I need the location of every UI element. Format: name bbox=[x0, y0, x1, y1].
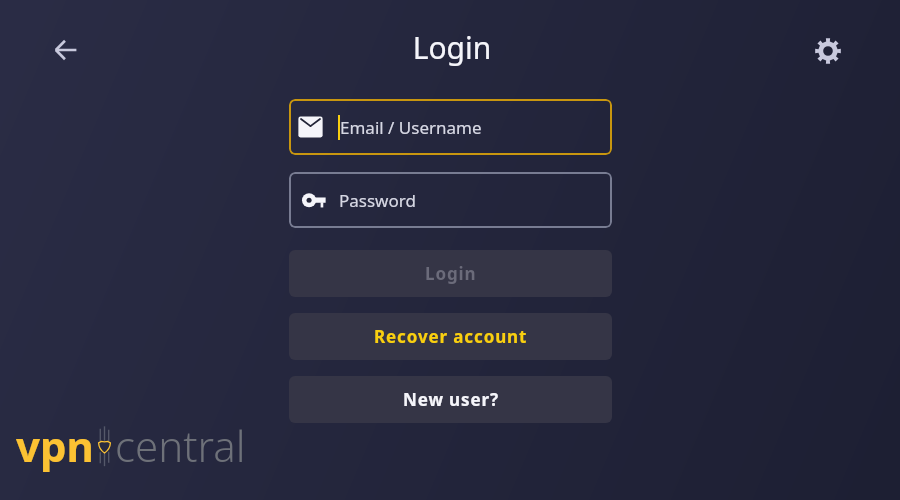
staticText: Recover account bbox=[374, 325, 528, 348]
staticText: Email / Username bbox=[340, 116, 482, 139]
button[interactable]: Password bbox=[289, 172, 612, 228]
staticText: vpn bbox=[16, 417, 94, 474]
button[interactable]: Login bbox=[289, 250, 612, 297]
staticText: Login bbox=[425, 262, 477, 285]
button[interactable]: Recover account bbox=[289, 313, 612, 360]
button[interactable]: Settings bbox=[806, 29, 850, 73]
staticText: New user? bbox=[403, 388, 499, 411]
staticText: Password bbox=[339, 189, 416, 212]
staticText: central bbox=[115, 417, 246, 474]
button[interactable]: Back bbox=[44, 28, 88, 72]
button[interactable]: Email / Username bbox=[289, 99, 612, 155]
button[interactable]: New user? bbox=[289, 376, 612, 423]
staticText: Login bbox=[2, 27, 900, 68]
